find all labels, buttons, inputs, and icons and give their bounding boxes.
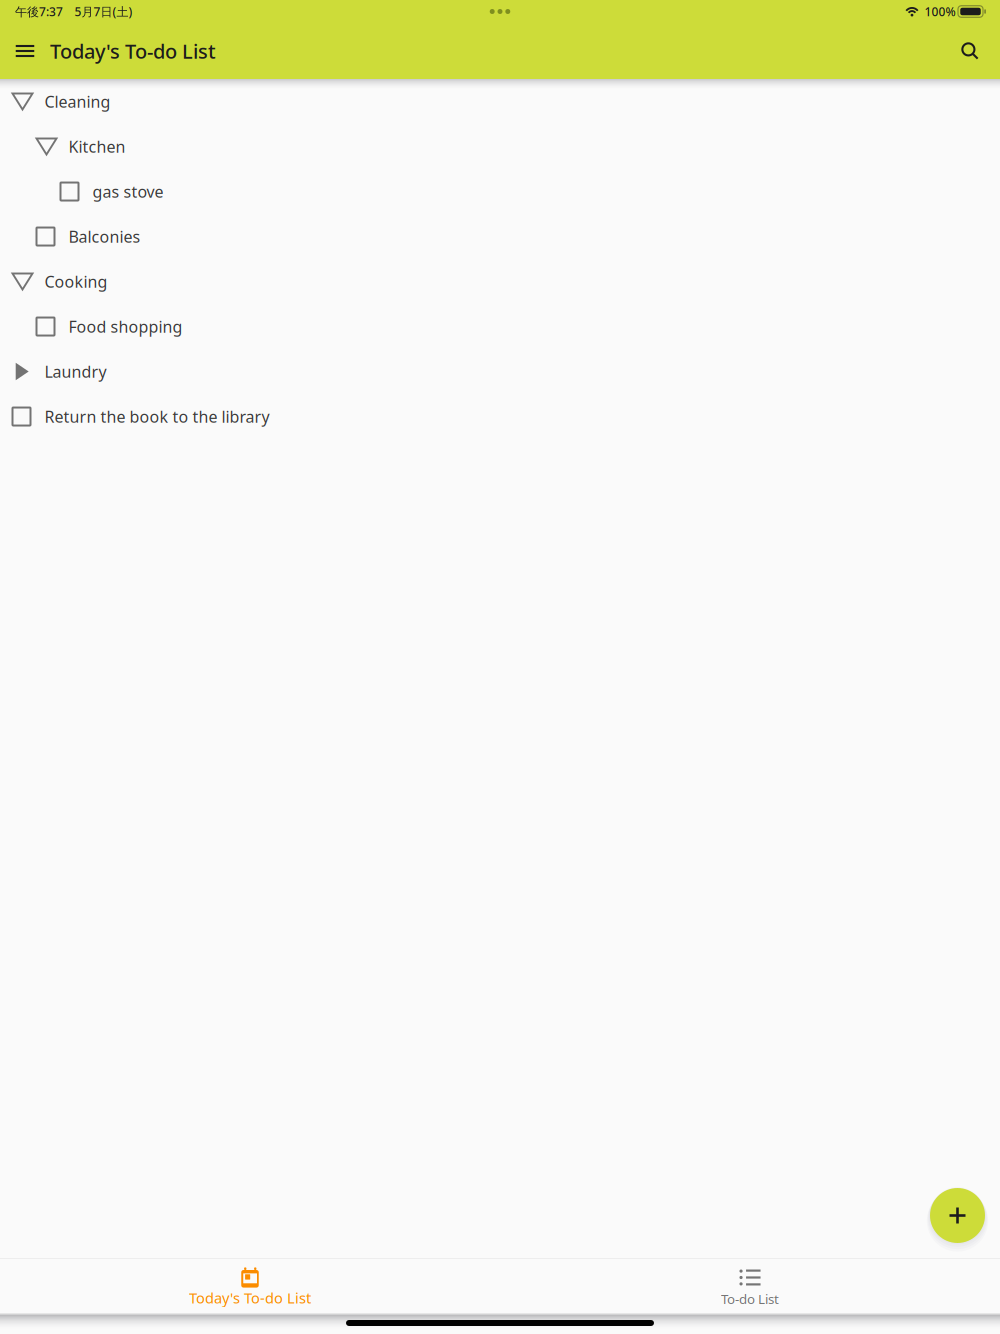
staticText: gas stove [92, 181, 163, 202]
staticText: Cooking [44, 271, 107, 292]
button[interactable]: Add task [917, 1175, 997, 1255]
staticText: Food shopping [68, 316, 182, 337]
button[interactable]: Laundry [0, 349, 1000, 394]
button[interactable]: Today's To-do List [0, 1258, 500, 1313]
button[interactable]: Kitchen [0, 124, 1000, 169]
staticText: 午後7:37 [15, 3, 63, 19]
staticText: Laundry [44, 361, 106, 382]
staticText: 100% [924, 3, 955, 19]
button[interactable]: Food shopping [0, 304, 1000, 349]
button[interactable]: To-do List [500, 1258, 1000, 1313]
staticText: Cleaning [44, 91, 110, 112]
button[interactable]: Cooking [0, 259, 1000, 304]
button[interactable]: Menu [0, 23, 50, 79]
staticText: 5月7日(土) [74, 3, 132, 19]
staticText: Kitchen [68, 136, 125, 157]
staticText: Balconies [68, 226, 140, 247]
button[interactable]: gas stove [0, 169, 1000, 214]
staticText: Today's To-do List [189, 1288, 311, 1307]
button[interactable]: Search [948, 23, 992, 79]
button[interactable]: Cleaning [0, 79, 1000, 124]
staticText: To-do List [721, 1290, 779, 1308]
button[interactable]: Balconies [0, 214, 1000, 259]
staticText: Today's To-do List [50, 38, 216, 64]
button[interactable]: Return the book to the library [0, 394, 1000, 439]
staticText: Return the book to the library [44, 406, 269, 427]
